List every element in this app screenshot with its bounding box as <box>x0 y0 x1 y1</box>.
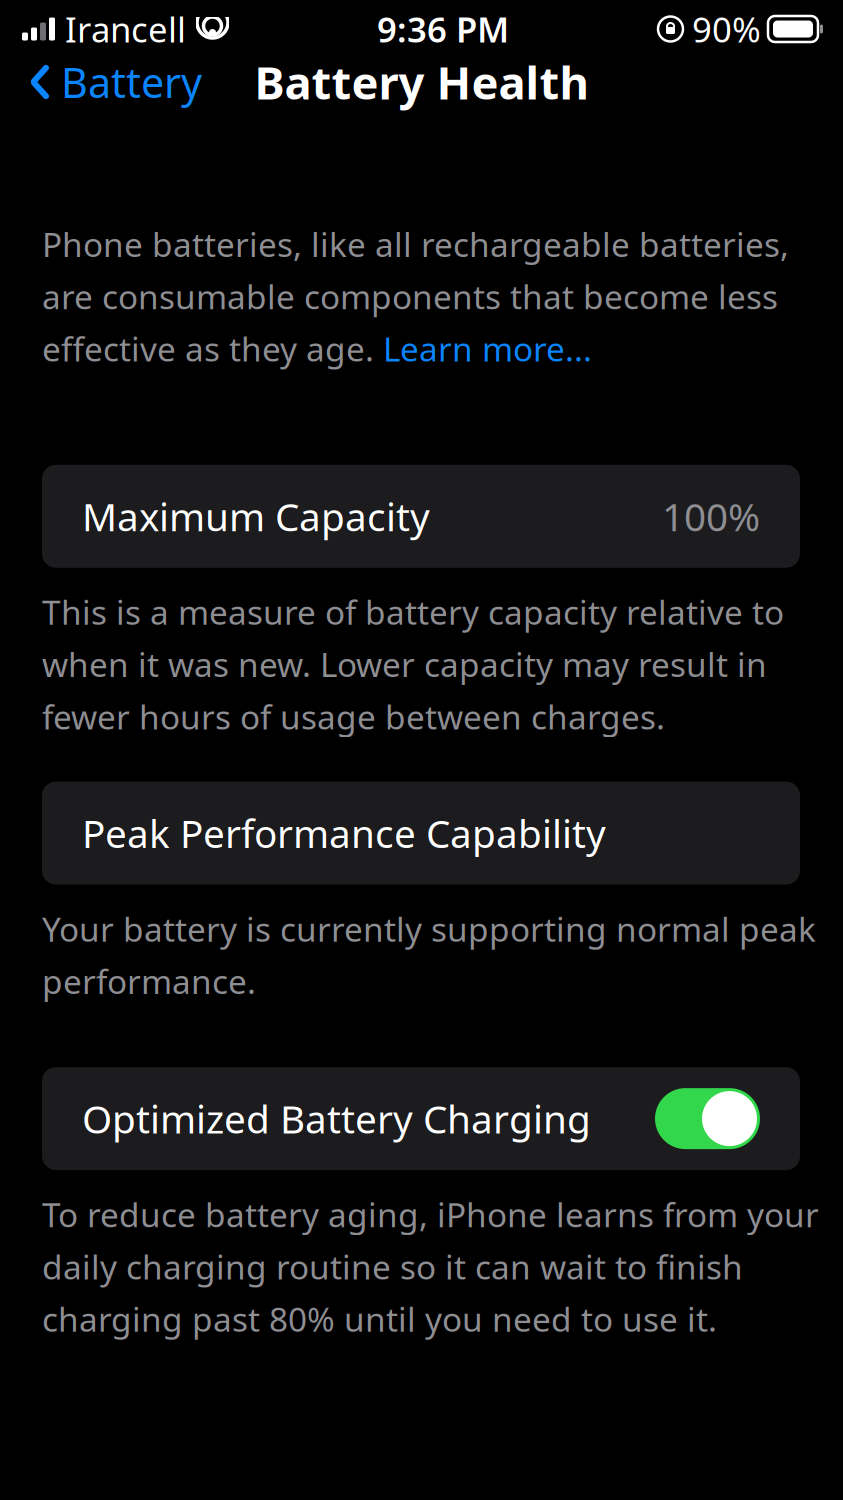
staticText: effective as they age. <box>42 326 383 371</box>
staticText: Phone batteries, like all rechargeable b… <box>42 222 789 266</box>
staticText: when it was new. Lower capacity may resu… <box>42 642 767 686</box>
button[interactable]: Back to Battery <box>20 45 210 119</box>
staticText: This is a measure of battery capacity re… <box>42 590 784 634</box>
button[interactable]: Optimized Battery Charging <box>42 1067 800 1170</box>
staticText: Learn more... <box>383 326 592 371</box>
staticText: charging past 80% until you need to use … <box>42 1297 717 1341</box>
staticText: Maximum Capacity <box>82 491 430 542</box>
staticText: Battery <box>61 55 202 109</box>
staticText: To reduce battery aging, iPhone learns f… <box>42 1192 819 1236</box>
staticText: Irancell <box>65 6 186 52</box>
staticText: fewer hours of usage between charges. <box>42 694 665 739</box>
staticText: are consumable components that become le… <box>42 274 778 319</box>
staticText: Your battery is currently supporting nor… <box>42 907 816 951</box>
button[interactable]: Learn more... <box>383 326 592 371</box>
staticText: 9:36 PM <box>377 6 509 52</box>
staticText: Battery Health <box>254 52 588 112</box>
staticText: 100% <box>662 491 760 542</box>
staticText: Optimized Battery Charging <box>82 1093 591 1144</box>
staticText: performance. <box>42 959 256 1003</box>
staticText: 90% <box>692 6 761 52</box>
button[interactable]: Maximum Capacity <box>42 465 800 568</box>
staticText: daily charging routine so it can wait to… <box>42 1244 743 1289</box>
staticText: Peak Performance Capability <box>82 807 606 859</box>
button[interactable]: Peak Performance Capability <box>42 782 800 885</box>
